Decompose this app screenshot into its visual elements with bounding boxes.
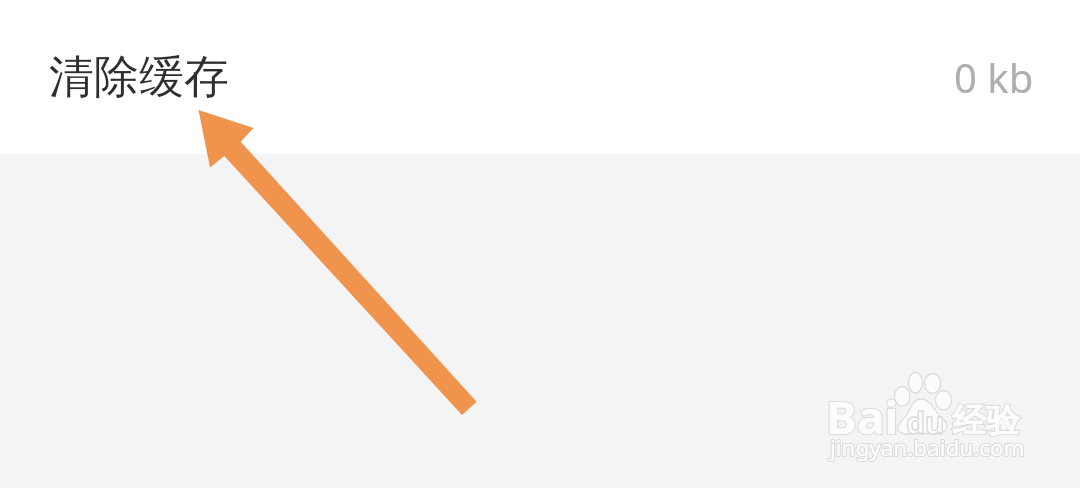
staticText: 清除缓存 [49, 49, 229, 106]
staticText: du [906, 402, 945, 443]
staticText: jingyan.baidu.com [830, 434, 1025, 463]
staticText: 经验 [952, 400, 1019, 442]
staticText: jingyan.baidu.com [830, 434, 1025, 463]
staticText: Bai [826, 386, 899, 447]
staticText: Bai [826, 386, 899, 447]
button[interactable]: 清除缓存 [0, 0, 1080, 154]
staticText: 经验 [952, 400, 1019, 442]
staticText: 0 kb [954, 50, 1034, 104]
